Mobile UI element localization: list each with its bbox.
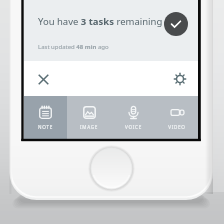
staticText: IMAGE	[80, 124, 98, 130]
button[interactable]: NOTE	[24, 96, 67, 139]
button[interactable]: VIDEO	[155, 96, 199, 139]
staticText: You have 3 tasks remaining	[38, 15, 163, 28]
button[interactable]: IMAGE	[67, 96, 111, 139]
button[interactable]: Mark all done	[164, 12, 188, 36]
staticText: VIDEO	[168, 124, 186, 130]
button[interactable]: Settings	[170, 69, 190, 89]
button[interactable]: VOICE	[111, 96, 155, 139]
button[interactable]: Close	[33, 69, 53, 89]
staticText: VOICE	[125, 124, 142, 130]
staticText: NOTE	[38, 124, 53, 130]
staticText: Last updated 48 min ago	[38, 43, 109, 51]
